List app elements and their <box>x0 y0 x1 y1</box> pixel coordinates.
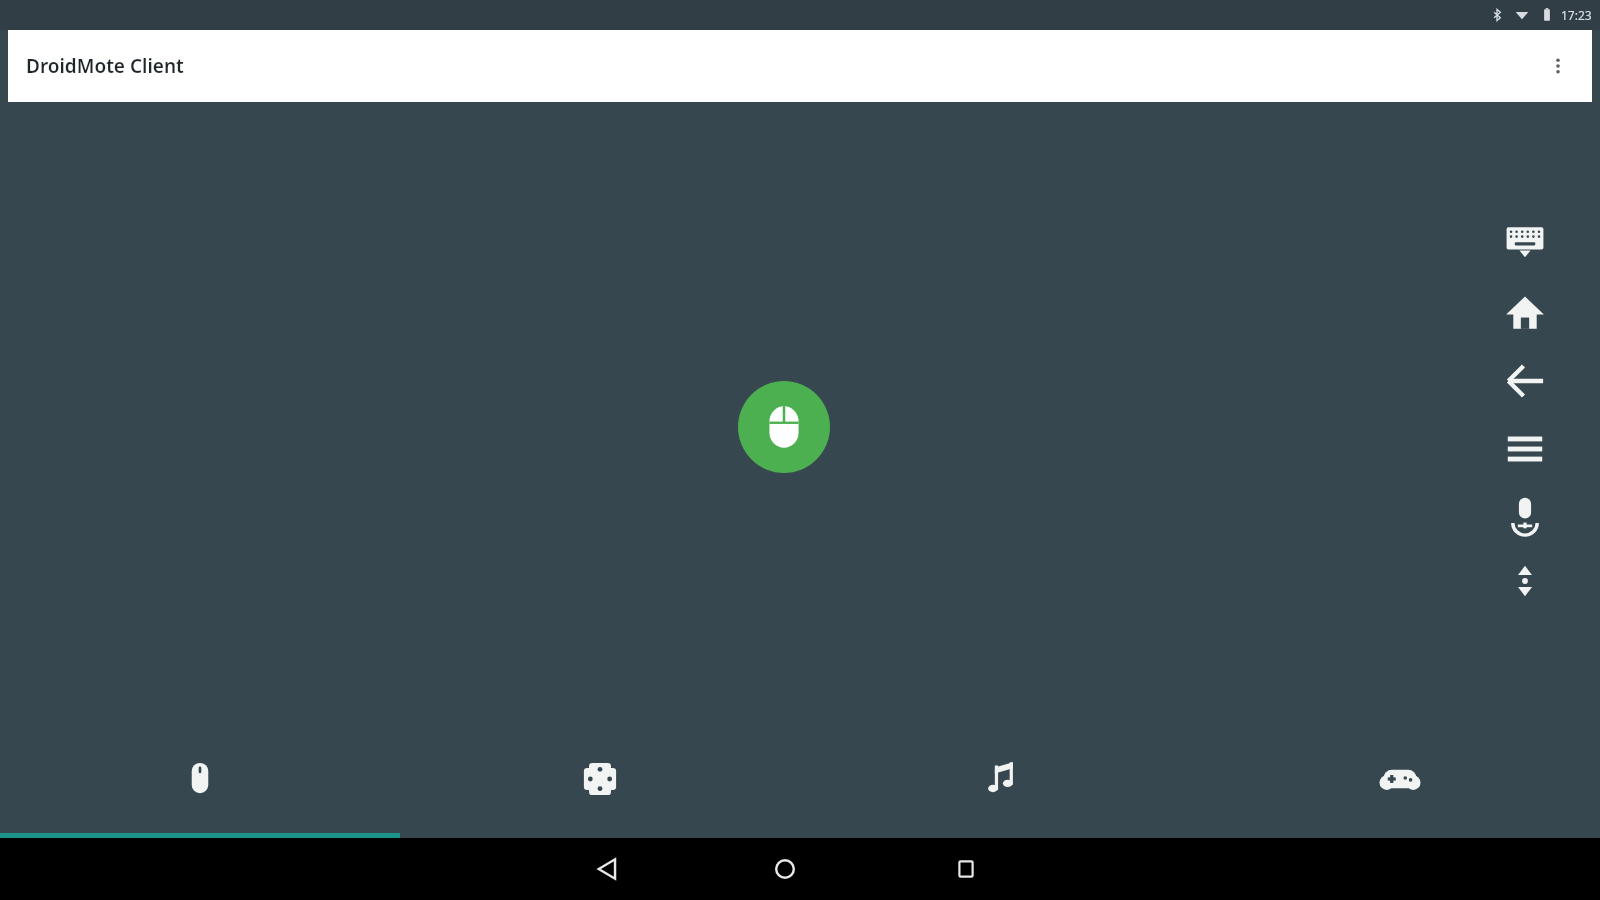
button[interactable]: Home <box>757 841 813 897</box>
button[interactable]: Hide keyboard <box>1502 222 1548 268</box>
staticText: 17:23 <box>1561 7 1592 23</box>
button[interactable]: Media <box>800 742 1200 838</box>
button[interactable]: Scroll <box>1502 558 1548 604</box>
button[interactable]: Menu <box>1502 426 1548 472</box>
button[interactable]: More options <box>1534 42 1582 90</box>
button[interactable]: Back <box>580 841 636 897</box>
button[interactable]: Back <box>1502 358 1548 404</box>
button[interactable]: Mouse <box>0 742 400 838</box>
staticText: DroidMote Client <box>26 53 184 79</box>
button[interactable]: Gamepad <box>1200 742 1600 838</box>
button[interactable]: Home <box>1502 290 1548 336</box>
button[interactable]: Mouse pad <box>738 381 830 473</box>
button[interactable]: Voice input <box>1502 492 1548 538</box>
button[interactable]: Recents <box>938 841 994 897</box>
button[interactable]: D-pad <box>400 742 800 838</box>
